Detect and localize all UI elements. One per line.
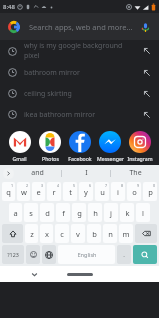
button[interactable]: c <box>55 224 69 243</box>
button[interactable]: g <box>72 203 86 222</box>
button[interactable]: a <box>9 203 22 222</box>
button[interactable]: Emoji <box>26 245 40 264</box>
button[interactable]: Messenger <box>95 131 125 162</box>
staticText: 5 <box>73 183 76 188</box>
button[interactable]: and <box>14 165 61 181</box>
button[interactable]: v <box>71 224 85 243</box>
staticText: u <box>100 187 105 197</box>
button[interactable]: Change language <box>42 245 56 264</box>
staticText: English <box>77 251 97 259</box>
button[interactable]: y <box>79 182 93 201</box>
button[interactable]: bathroom mirror <box>0 62 159 83</box>
staticText: z <box>30 229 34 239</box>
staticText: f <box>62 208 65 218</box>
button[interactable]: Search apps, web and more... <box>0 13 159 40</box>
button[interactable]: h <box>88 203 102 222</box>
staticText: Gmail <box>12 155 27 162</box>
button[interactable]: q <box>2 182 15 201</box>
staticText: w <box>21 187 27 197</box>
staticText: q <box>6 187 11 197</box>
button[interactable]: j <box>104 203 118 222</box>
staticText: j <box>110 208 112 218</box>
button[interactable]: x <box>40 224 53 243</box>
button[interactable]: I <box>62 165 110 181</box>
staticText: c <box>60 229 64 239</box>
staticText: ikea bathroom mirror <box>24 110 96 120</box>
button[interactable]: Insert suggestion <box>135 40 159 62</box>
button[interactable]: Voice search <box>139 21 151 33</box>
button[interactable]: i <box>111 182 125 201</box>
staticText: x <box>45 229 49 239</box>
staticText: v <box>76 229 80 239</box>
button[interactable]: Search <box>133 245 157 264</box>
button[interactable]: t <box>63 182 77 201</box>
button[interactable]: Backspace <box>135 224 157 243</box>
button[interactable]: Insert suggestion <box>135 62 159 83</box>
staticText: 8:48 <box>3 3 15 11</box>
staticText: Search apps, web and more... <box>29 22 133 32</box>
staticText: 2 <box>26 183 29 188</box>
staticText: d <box>45 208 50 218</box>
staticText: p <box>148 187 153 197</box>
button[interactable]: w <box>17 182 30 201</box>
button[interactable]: d <box>40 203 54 222</box>
staticText: y <box>84 187 88 197</box>
staticText: I <box>85 168 88 178</box>
button[interactable]: The <box>111 165 159 181</box>
button[interactable]: n <box>103 224 117 243</box>
button[interactable]: Expand toolbar <box>3 168 14 179</box>
staticText: a <box>13 208 18 218</box>
button[interactable]: ceiling skirting <box>0 83 159 104</box>
staticText: e <box>36 187 41 197</box>
staticText: 8 <box>121 183 124 188</box>
button[interactable]: English <box>58 245 115 264</box>
staticText: t <box>69 187 72 197</box>
button[interactable]: why is my google background black <box>0 40 159 62</box>
button[interactable]: k <box>120 203 134 222</box>
button[interactable]: Facebook <box>65 131 95 162</box>
staticText: k <box>125 208 130 218</box>
staticText: The <box>129 168 142 178</box>
button[interactable]: b <box>87 224 101 243</box>
staticText: 1 <box>11 183 14 188</box>
button[interactable]: r <box>47 182 61 201</box>
staticText: r <box>52 187 56 197</box>
staticText: Instagram <box>127 155 153 162</box>
button[interactable]: Gmail <box>4 131 35 162</box>
staticText: 4 <box>57 183 60 188</box>
button[interactable]: Instagram <box>125 131 155 162</box>
button[interactable]: ikea bathroom mirror <box>0 104 159 125</box>
staticText: why is my google background black <box>24 41 135 51</box>
button[interactable]: m <box>119 224 133 243</box>
staticText: s <box>29 208 33 218</box>
staticText: and <box>31 168 44 178</box>
button[interactable]: Insert suggestion <box>135 104 159 125</box>
button[interactable]: p <box>143 182 157 201</box>
staticText: b <box>92 229 97 239</box>
staticText: ceiling skirting <box>24 89 72 99</box>
button[interactable]: Shift <box>2 224 23 243</box>
staticText: bathroom mirror <box>24 68 80 78</box>
button[interactable]: u <box>95 182 109 201</box>
button[interactable]: f <box>56 203 70 222</box>
staticText: n <box>108 229 113 239</box>
button[interactable]: Photos <box>35 131 65 162</box>
button[interactable]: z <box>25 224 38 243</box>
button[interactable]: s <box>24 203 38 222</box>
button[interactable]: l <box>136 203 150 222</box>
button[interactable]: Insert suggestion <box>135 83 159 104</box>
staticText: 3 <box>41 183 44 188</box>
staticText: m <box>122 229 130 239</box>
staticText: h <box>93 208 98 218</box>
button[interactable]: o <box>127 182 141 201</box>
button[interactable]: ?123 <box>2 245 24 264</box>
staticText: 0 <box>153 183 156 188</box>
button[interactable]: e <box>32 182 45 201</box>
button[interactable]: Home <box>67 273 93 276</box>
staticText: pixel <box>24 51 40 61</box>
button[interactable]: Hide keyboard <box>28 268 40 280</box>
staticText: 7 <box>105 183 108 188</box>
staticText: Messenger <box>97 155 124 162</box>
staticText: . <box>123 251 125 259</box>
